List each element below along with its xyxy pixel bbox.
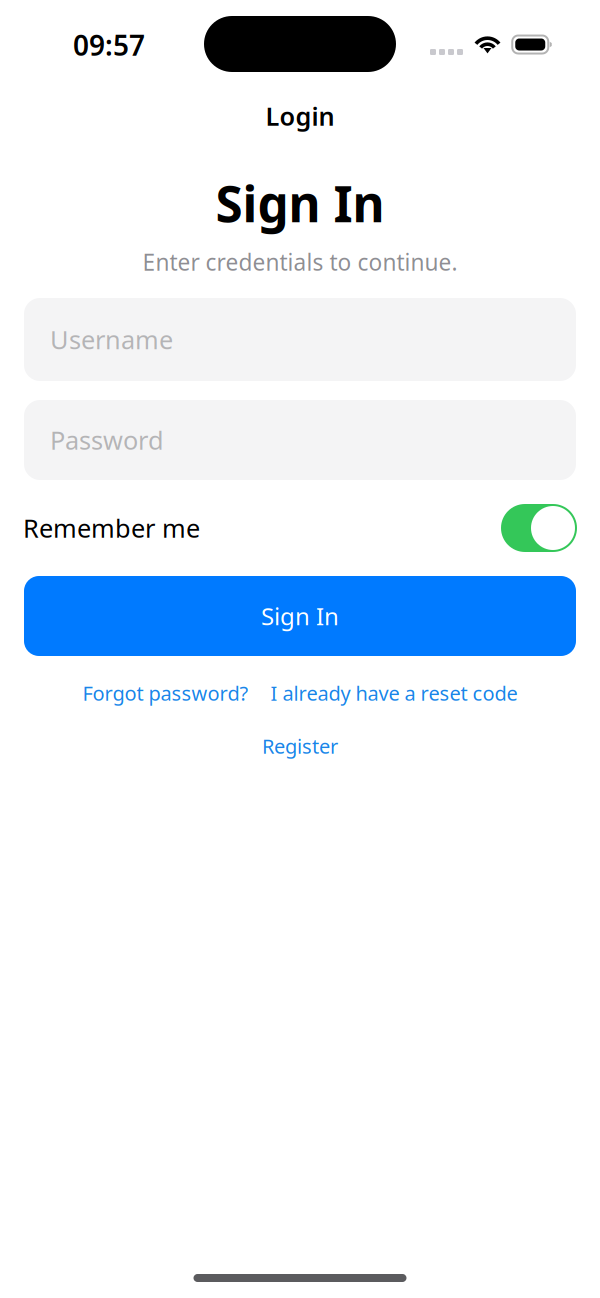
staticText: Username: [50, 323, 173, 356]
staticText: Register: [262, 733, 338, 759]
staticText: Password: [50, 423, 164, 457]
staticText: 09:57: [73, 26, 145, 64]
button[interactable]: Sign In: [24, 576, 576, 656]
staticText: Login: [265, 99, 334, 133]
button[interactable]: I already have a reset code: [270, 680, 517, 706]
button[interactable]: Remember me: [23, 492, 577, 564]
staticText: Enter credentials to continue.: [142, 247, 457, 277]
staticText: Sign In: [261, 600, 339, 632]
button[interactable]: Register: [262, 732, 338, 760]
staticText: Forgot password?: [82, 680, 248, 706]
staticText: Sign In: [215, 170, 384, 236]
staticText: Remember me: [23, 511, 200, 545]
button[interactable]: Forgot password?: [82, 680, 248, 706]
staticText: I already have a reset code: [270, 680, 517, 706]
